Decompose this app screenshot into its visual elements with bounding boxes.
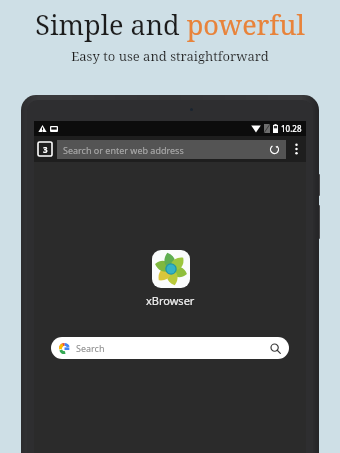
staticText: 10.28: [281, 123, 302, 134]
button[interactable]: Tabs: [38, 142, 52, 156]
staticText: xBrowser: [146, 293, 195, 308]
button[interactable]: Search or enter web address: [57, 140, 286, 159]
staticText: Simple and powerful: [35, 6, 305, 43]
button[interactable]: Search: [51, 337, 289, 359]
button[interactable]: More options: [290, 139, 302, 159]
staticText: Search or enter web address: [63, 144, 184, 156]
other: Search: [270, 343, 281, 354]
staticText: 3: [43, 144, 48, 155]
staticText: Easy to use and straightforward: [71, 47, 269, 65]
button[interactable]: xBrowser: [146, 250, 195, 308]
staticText: Search: [76, 342, 105, 354]
other: Reload: [269, 144, 280, 155]
